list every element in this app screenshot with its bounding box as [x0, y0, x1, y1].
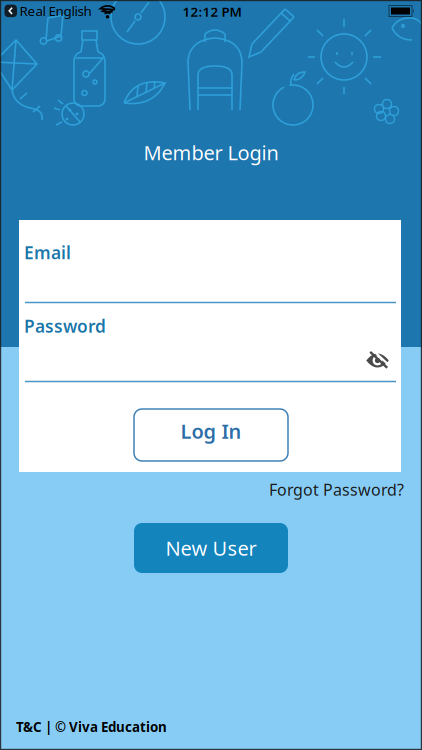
- staticText: T&C | © Viva Education: [16, 718, 167, 736]
- button[interactable]: New User: [134, 523, 288, 573]
- button[interactable]: Forgot Password?: [269, 479, 404, 500]
- button[interactable]: T&C | © Viva Education: [16, 718, 167, 736]
- button[interactable]: Log In: [134, 409, 288, 461]
- staticText: Email: [24, 241, 71, 264]
- button[interactable]: Email: [19, 234, 401, 306]
- staticText: Password: [24, 314, 106, 337]
- staticText: Log In: [180, 418, 241, 444]
- button[interactable]: Back to Real English: [4, 2, 91, 20]
- staticText: Member Login: [143, 139, 278, 166]
- staticText: New User: [165, 535, 256, 561]
- staticText: Real English: [19, 2, 91, 20]
- button[interactable]: Password: [19, 310, 401, 382]
- staticText: Forgot Password?: [269, 479, 404, 500]
- button[interactable]: Show password: [366, 351, 389, 370]
- staticText: 12:12 PM: [182, 3, 241, 20]
